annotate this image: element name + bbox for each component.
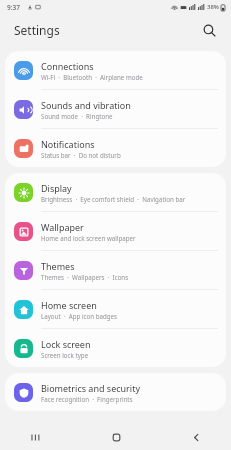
- staticText: Home screen: [41, 299, 97, 311]
- button[interactable]: Home: [103, 424, 129, 450]
- staticText: Wallpaper: [41, 221, 84, 233]
- staticText: 9:37: [7, 3, 20, 12]
- button[interactable]: Themes: [5, 251, 226, 289]
- button[interactable]: Home screen: [5, 290, 226, 328]
- staticText: Themes · Wallpapers · Icons: [41, 273, 129, 281]
- staticText: Lock screen: [41, 338, 91, 350]
- staticText: Home and lock screen wallpaper: [41, 234, 136, 242]
- staticText: Display: [41, 182, 72, 194]
- button[interactable]: Wallpaper: [5, 212, 226, 250]
- button[interactable]: Display: [5, 173, 226, 211]
- staticText: Themes: [41, 260, 75, 272]
- button[interactable]: Search: [197, 18, 221, 42]
- staticText: Screen lock type: [41, 351, 89, 359]
- staticText: Biometrics and security: [41, 382, 141, 394]
- button[interactable]: Notifications: [5, 129, 226, 167]
- staticText: Sounds and vibration: [41, 99, 131, 111]
- staticText: Status bar · Do not disturb: [41, 151, 121, 159]
- staticText: Settings: [14, 22, 60, 38]
- staticText: Sound mode · Ringtone: [41, 112, 113, 120]
- button[interactable]: Lock screen: [5, 329, 226, 367]
- button[interactable]: Connections: [5, 51, 226, 89]
- button[interactable]: Sounds and vibration: [5, 90, 226, 128]
- staticText: 38%: [207, 3, 219, 11]
- staticText: Face recognition · Fingerprints: [41, 395, 133, 403]
- staticText: Wi-Fi · Bluetooth · Airplane mode: [41, 73, 143, 81]
- staticText: Brightness · Eye comfort shield · Naviga…: [41, 195, 186, 203]
- staticText: Layout · App icon badges: [41, 312, 118, 320]
- staticText: Connections: [41, 60, 94, 72]
- button[interactable]: Biometrics and security: [5, 373, 226, 411]
- button[interactable]: Recents: [22, 424, 48, 450]
- staticText: Notifications: [41, 138, 95, 150]
- button[interactable]: Back: [183, 424, 209, 450]
